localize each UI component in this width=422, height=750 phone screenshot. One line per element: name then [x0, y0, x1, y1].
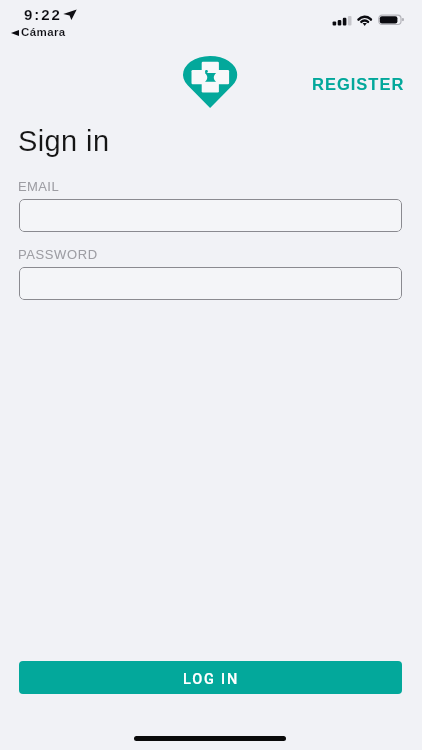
staticText: PASSWORD — [18, 247, 98, 262]
button[interactable]: LOG IN — [19, 661, 402, 694]
staticText: Cámara — [21, 26, 66, 39]
staticText: Sign in — [18, 125, 110, 157]
staticText: EMAIL — [18, 179, 60, 194]
button[interactable] — [19, 267, 402, 300]
staticText: REGISTER — [312, 75, 405, 93]
button[interactable]: REGISTER — [312, 75, 405, 93]
staticText: LOG IN — [183, 671, 240, 688]
button[interactable] — [19, 199, 402, 232]
staticText: 9:22 — [24, 6, 62, 23]
